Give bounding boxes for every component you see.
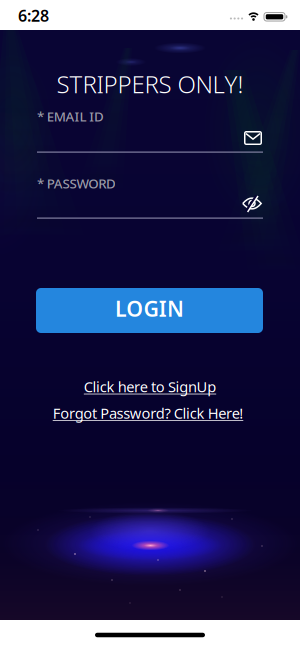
staticText: STRIPPERS ONLY! [56, 68, 243, 100]
staticText: Forgot Password? Click Here! [53, 403, 243, 423]
button[interactable]: Click here to SignUp [84, 377, 216, 396]
button[interactable]: Forgot Password? Click Here! [53, 403, 243, 423]
button[interactable] [37, 189, 263, 219]
staticText: * PASSWORD [37, 174, 116, 192]
staticText: * EMAIL ID [37, 107, 104, 125]
button[interactable]: LOGIN [36, 288, 263, 333]
button[interactable] [243, 130, 263, 146]
staticText: 6:28 [18, 5, 49, 26]
button[interactable] [241, 194, 263, 212]
button[interactable] [37, 123, 263, 153]
staticText: Click here to SignUp [84, 377, 216, 396]
staticText: LOGIN [115, 294, 184, 323]
